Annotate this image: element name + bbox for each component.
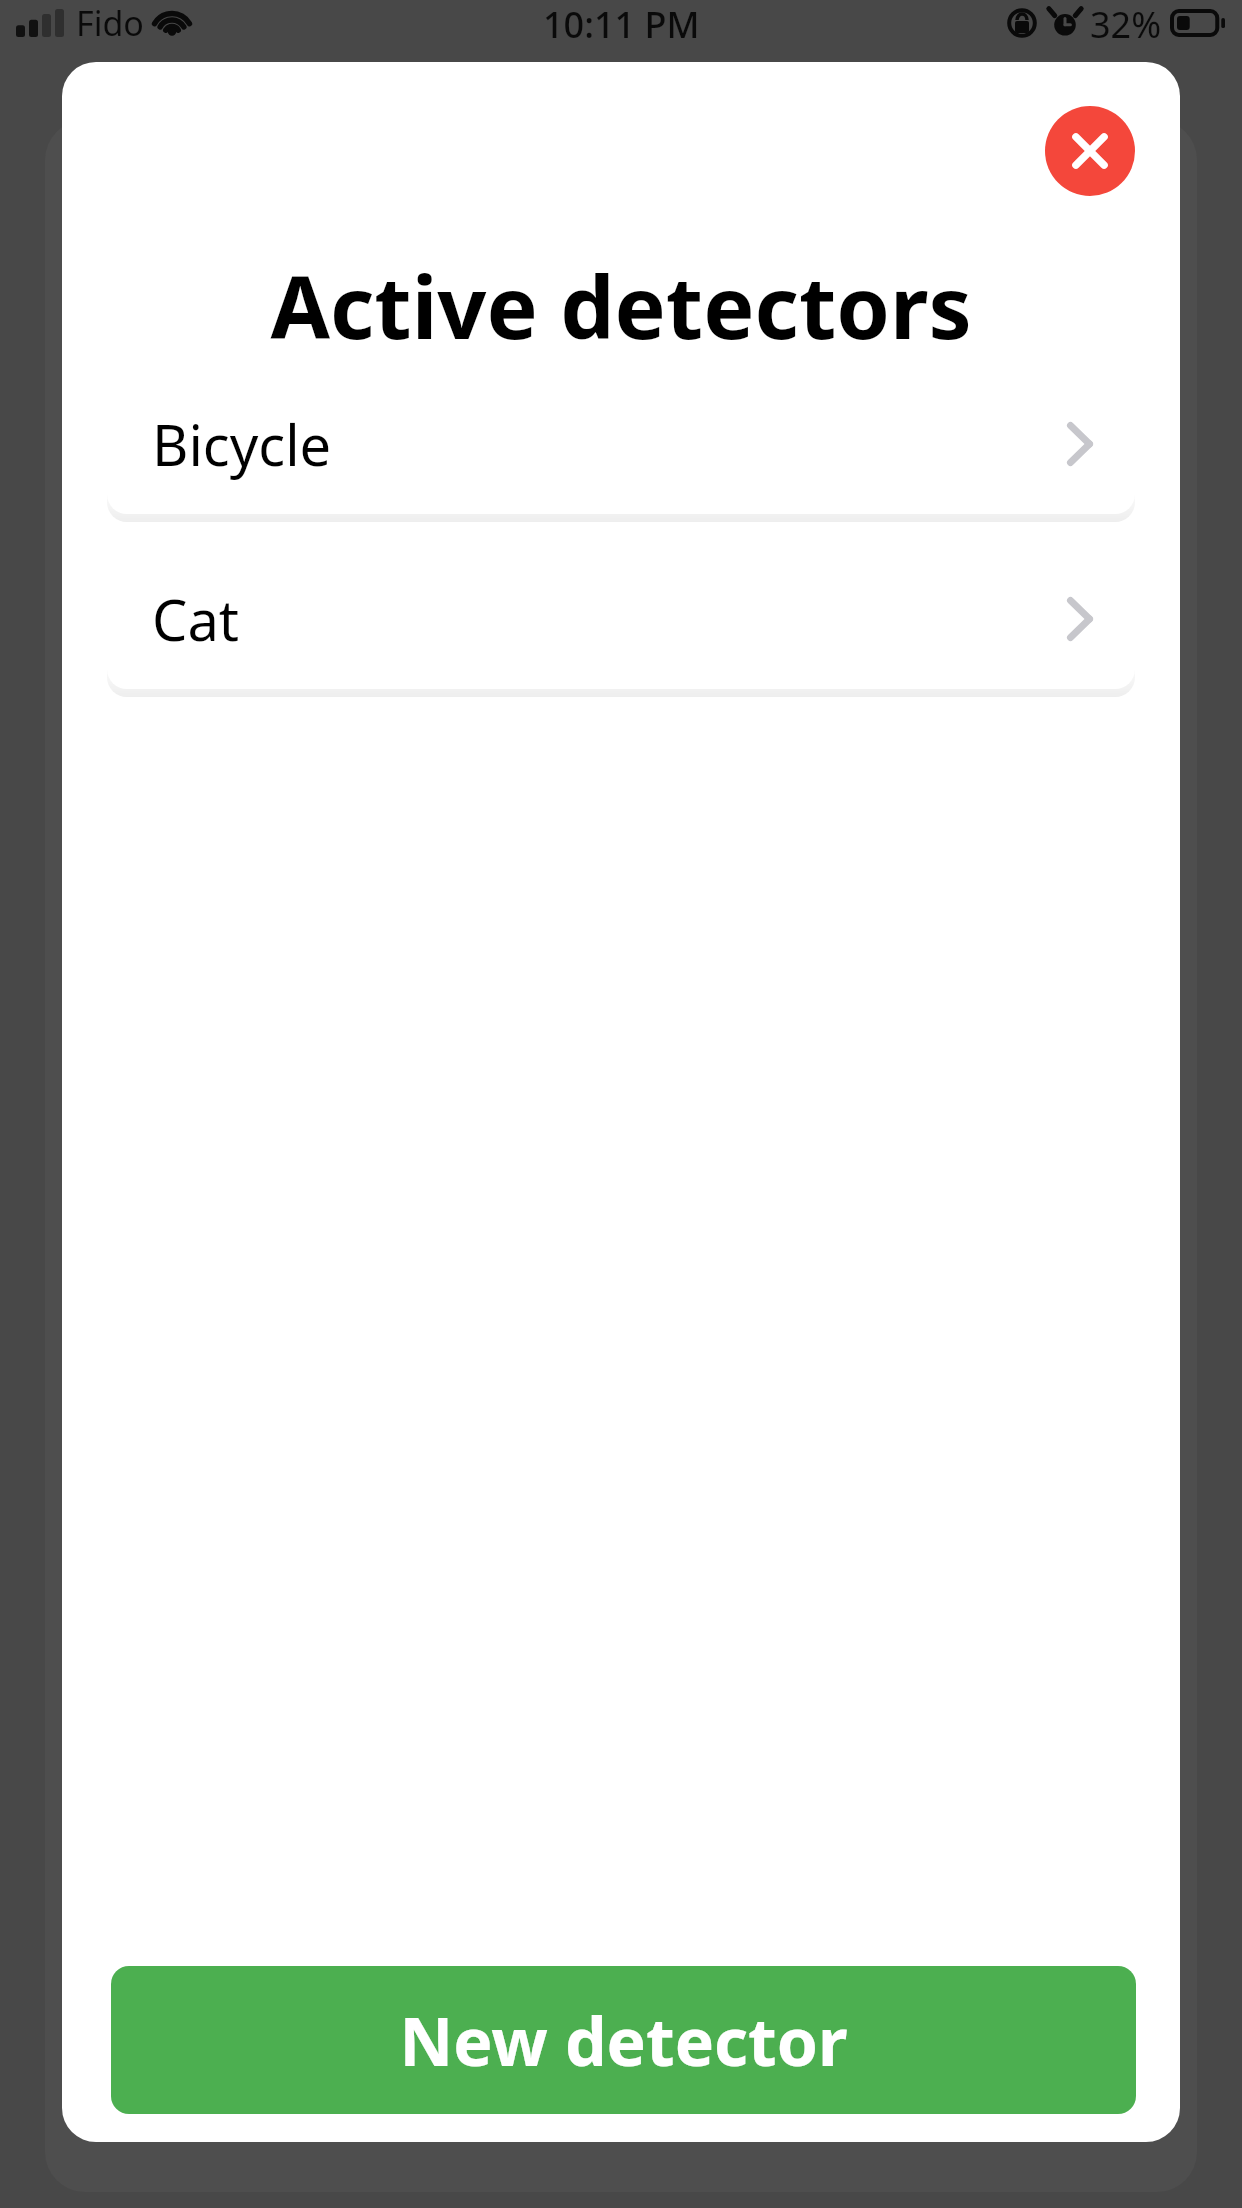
staticText: Cat — [152, 581, 240, 657]
staticText: 10:11 PM — [543, 0, 700, 46]
staticText: New detector — [399, 1995, 848, 2085]
staticText: Bicycle — [152, 406, 332, 482]
staticText: Active detectors — [270, 247, 972, 364]
staticText: 32% — [1090, 0, 1162, 46]
button[interactable]: Close — [1045, 106, 1135, 196]
button[interactable]: New detector — [111, 1966, 1136, 2114]
staticText: Fido — [76, 0, 144, 46]
button[interactable]: Cat — [107, 548, 1135, 689]
button[interactable]: Bicycle — [107, 373, 1135, 514]
